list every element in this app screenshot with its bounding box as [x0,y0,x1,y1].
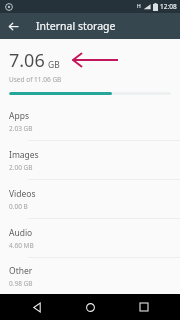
staticText: 7.06 [9,48,45,73]
staticText: Apps [9,110,29,122]
staticText: 4.60 MB [9,241,34,250]
staticText: 0.00 B [9,202,28,211]
staticText: 12:08 [160,2,177,11]
button[interactable]: Back [0,13,26,39]
button[interactable]: Back [20,294,54,320]
staticText: Images [9,149,39,161]
staticText: 0.98 GB [9,279,33,288]
staticText: 2.00 GB [9,163,33,172]
button[interactable]: Home [73,294,107,320]
staticText: 2.03 GB [9,124,33,133]
staticText: GB [48,59,60,71]
staticText: Videos [9,188,36,200]
button[interactable]: Videos [0,180,180,218]
button[interactable]: Images [0,141,180,179]
staticText: H [137,3,141,10]
button[interactable]: Apps [0,102,180,140]
staticText: Audio [9,227,33,239]
staticText: Other [9,265,33,277]
staticText: Internal storage [36,19,116,33]
button[interactable]: Recent apps [127,294,161,320]
button[interactable]: Other [0,258,180,294]
button[interactable]: Audio [0,219,180,257]
staticText: Used of 11.06 GB [9,75,62,84]
